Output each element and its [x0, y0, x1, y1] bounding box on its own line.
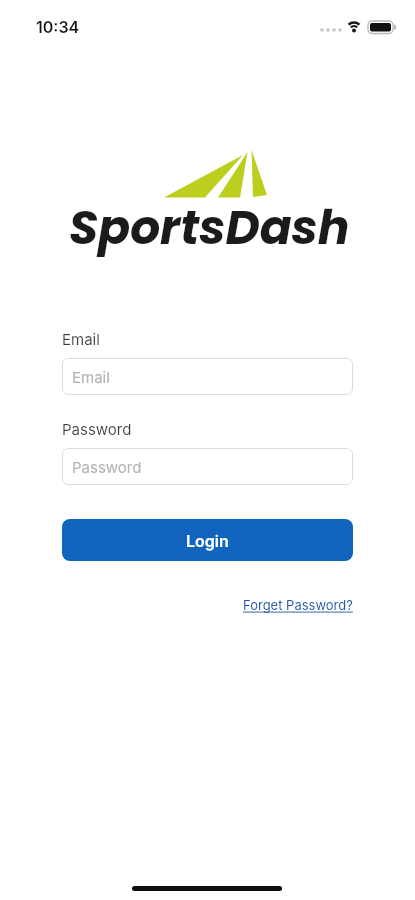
staticText: Login [186, 531, 229, 550]
staticText: SportsDash [69, 195, 350, 261]
staticText: Email [72, 368, 110, 386]
button[interactable]: Login [62, 519, 353, 561]
staticText: Password [72, 458, 142, 476]
button[interactable]: Forget Password? [243, 597, 353, 613]
button[interactable]: Email [62, 358, 353, 395]
staticText: 10:34 [36, 17, 80, 36]
button[interactable]: Password [62, 448, 353, 485]
staticText: Password [62, 420, 132, 438]
staticText: Email [62, 330, 100, 348]
